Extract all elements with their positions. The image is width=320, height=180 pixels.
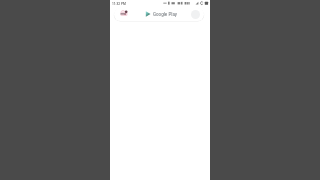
button[interactable]: Account	[191, 10, 200, 19]
button[interactable]: Shop	[114, 8, 204, 21]
other: Shop	[120, 10, 128, 17]
staticText: 11:32 PM	[112, 2, 126, 6]
staticText: Google Play	[153, 12, 178, 17]
